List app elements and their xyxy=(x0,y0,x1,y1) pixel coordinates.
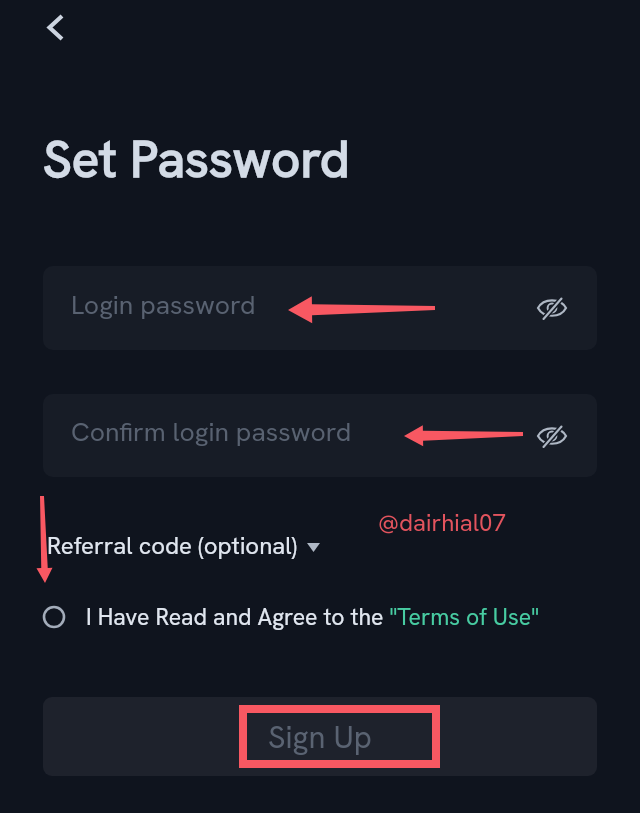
staticText: Confirm login password xyxy=(71,414,352,449)
button[interactable]: Login password xyxy=(43,266,597,350)
button[interactable]: Show password xyxy=(529,285,575,331)
button[interactable]: I Have Read and Agree to the "Terms of U… xyxy=(42,601,539,633)
button[interactable]: Confirm login password xyxy=(43,394,597,477)
staticText: I Have Read and Agree to the "Terms of U… xyxy=(86,602,539,632)
staticText: Login password xyxy=(71,287,256,322)
button[interactable]: Referral code (optional) xyxy=(47,530,297,561)
staticText: Sign Up xyxy=(268,717,372,757)
button[interactable]: Show password xyxy=(529,413,575,459)
button[interactable]: Sign Up xyxy=(43,697,597,776)
button[interactable]: Back xyxy=(26,2,86,50)
staticText: @dairhial07 xyxy=(378,507,506,538)
staticText: Set Password xyxy=(43,126,350,192)
